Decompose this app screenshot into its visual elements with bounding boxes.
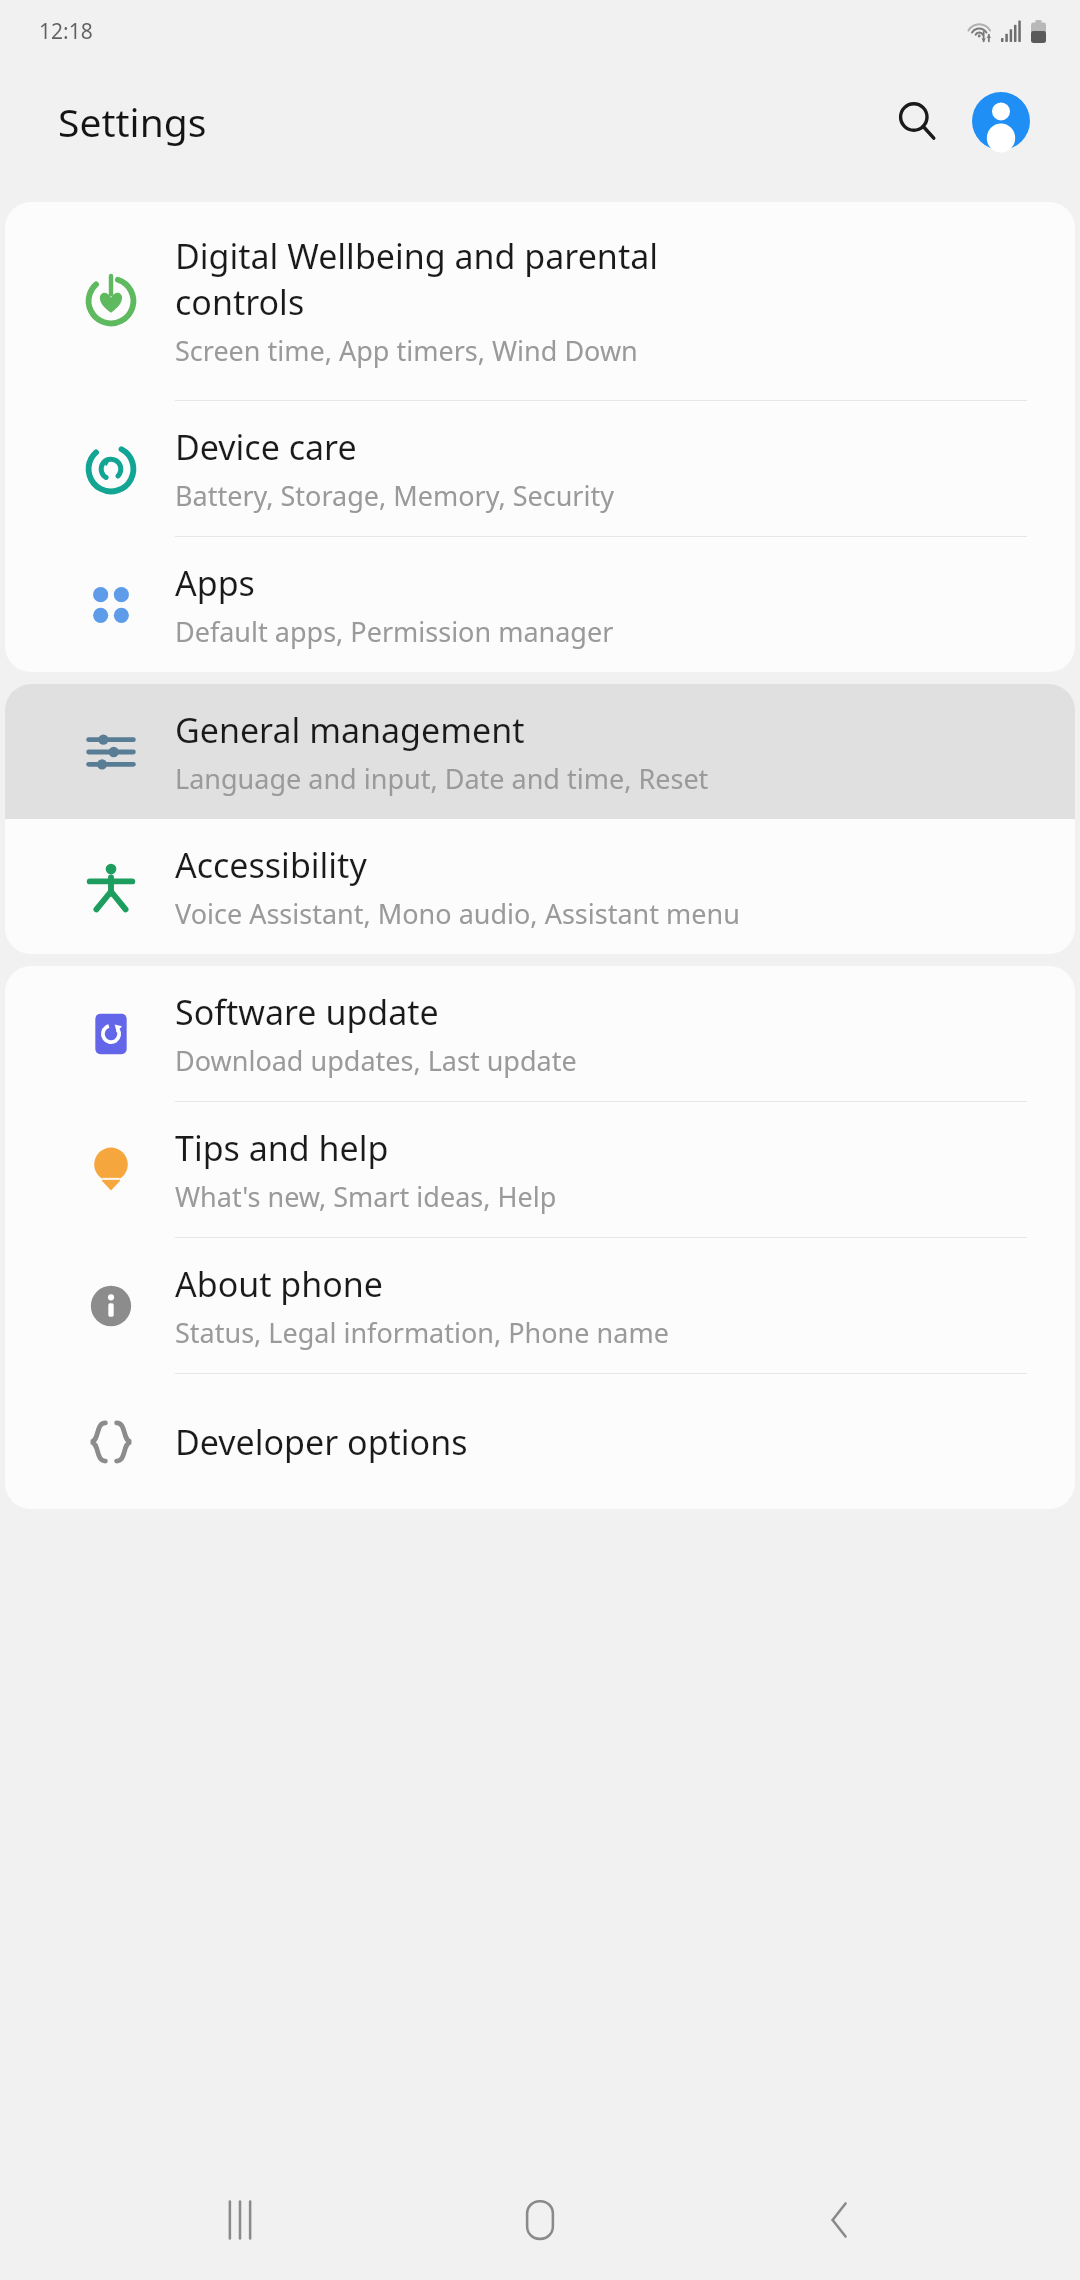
staticText: Device care (175, 424, 357, 470)
staticText: Screen time, App timers, Wind Down (175, 332, 638, 369)
staticText: Accessibility (175, 842, 367, 888)
button[interactable]: About phone (5, 1238, 1075, 1373)
staticText: Settings (58, 95, 207, 148)
button[interactable]: Recents (180, 2160, 300, 2280)
button[interactable]: Digital Wellbeing and parental controls (5, 202, 1075, 400)
button[interactable]: Apps (5, 537, 1075, 672)
button[interactable]: Software update (5, 966, 1075, 1101)
button[interactable]: Developer options (5, 1374, 1075, 1509)
button[interactable]: Account (962, 82, 1040, 160)
staticText: Default apps, Permission manager (175, 613, 614, 650)
button[interactable]: Accessibility (5, 819, 1075, 954)
staticText: Download updates, Last update (175, 1042, 577, 1079)
button[interactable]: Tips and help (5, 1102, 1075, 1237)
staticText: Voice Assistant, Mono audio, Assistant m… (175, 895, 740, 932)
button[interactable]: Back (780, 2160, 900, 2280)
staticText: General management (175, 707, 525, 753)
button[interactable]: Home (480, 2160, 600, 2280)
staticText: Digital Wellbeing and parental controls (175, 233, 659, 325)
staticText: Tips and help (175, 1125, 389, 1171)
staticText: About phone (175, 1261, 384, 1307)
button[interactable]: Search (878, 82, 956, 160)
staticText: Language and input, Date and time, Reset (175, 760, 709, 797)
button[interactable]: General management (5, 684, 1075, 819)
button[interactable]: Device care (5, 401, 1075, 536)
staticText: Software update (175, 989, 439, 1035)
staticText: Apps (175, 560, 255, 606)
staticText: What's new, Smart ideas, Help (175, 1178, 557, 1215)
staticText: 12:18 (39, 17, 93, 46)
staticText: Battery, Storage, Memory, Security (175, 477, 614, 514)
staticText: Developer options (175, 1419, 468, 1465)
staticText: Status, Legal information, Phone name (175, 1314, 669, 1351)
